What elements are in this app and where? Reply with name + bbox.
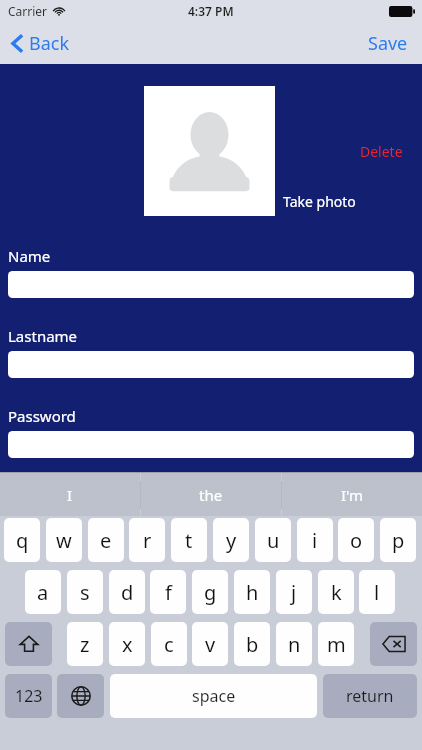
button[interactable]: e (88, 518, 124, 562)
button[interactable]: Backspace (370, 622, 417, 666)
staticText: u (267, 527, 280, 554)
staticText: s (80, 579, 90, 606)
button[interactable]: c (151, 622, 187, 666)
staticText: I'm (341, 485, 364, 505)
staticText: q (16, 527, 29, 554)
button[interactable]: x (109, 622, 145, 666)
staticText: space (192, 685, 236, 707)
button[interactable]: w (46, 518, 82, 562)
staticText: d (121, 579, 134, 606)
staticText: Take photo (283, 192, 356, 211)
button[interactable]: l (359, 570, 395, 614)
button[interactable] (8, 431, 414, 458)
button[interactable]: n (276, 622, 312, 666)
staticText: Lastname (8, 326, 78, 346)
button[interactable]: d (109, 570, 145, 614)
button[interactable]: p (380, 518, 416, 562)
staticText: n (288, 631, 301, 658)
staticText: t (185, 527, 193, 554)
staticText: k (331, 579, 342, 606)
staticText: r (143, 527, 152, 554)
button[interactable]: k (318, 570, 354, 614)
button[interactable]: return (323, 674, 417, 718)
staticText: l (374, 579, 380, 606)
staticText: Back (29, 31, 70, 56)
staticText: m (327, 631, 346, 658)
button[interactable]: a (25, 570, 61, 614)
staticText: a (37, 579, 49, 606)
button[interactable]: g (192, 570, 228, 614)
staticText: I (67, 485, 73, 505)
staticText: c (164, 631, 174, 658)
staticText: p (392, 527, 405, 554)
button[interactable]: i (297, 518, 333, 562)
button[interactable]: u (255, 518, 291, 562)
staticText: x (122, 631, 133, 658)
staticText: return (346, 685, 394, 707)
staticText: o (350, 527, 363, 554)
button[interactable]: j (276, 570, 312, 614)
button[interactable]: r (129, 518, 165, 562)
button[interactable]: t (171, 518, 207, 562)
staticText: z (80, 631, 90, 658)
button[interactable]: y (213, 518, 249, 562)
button[interactable]: Take photo (283, 192, 356, 211)
staticText: Password (8, 406, 76, 426)
staticText: 4:37 PM (188, 3, 234, 19)
staticText: Name (8, 246, 51, 266)
staticText: 123 (15, 685, 43, 707)
staticText: i (312, 527, 318, 554)
button[interactable]: f (150, 570, 186, 614)
staticText: Carrier (8, 3, 48, 19)
button[interactable]: s (67, 570, 103, 614)
button[interactable] (8, 351, 414, 378)
button[interactable]: q (4, 518, 40, 562)
staticText: j (291, 579, 297, 606)
staticText: Delete (360, 142, 403, 161)
staticText: y (226, 527, 237, 554)
button[interactable]: o (338, 518, 374, 562)
button[interactable]: space (110, 674, 317, 718)
button[interactable]: z (67, 622, 103, 666)
button[interactable] (8, 271, 414, 298)
button[interactable]: the (141, 473, 281, 516)
staticText: the (199, 485, 223, 505)
button[interactable]: v (192, 622, 228, 666)
staticText: w (56, 527, 72, 554)
button[interactable]: Back (6, 27, 76, 60)
button[interactable]: I (0, 473, 140, 516)
button[interactable]: b (234, 622, 270, 666)
staticText: Save (368, 31, 408, 56)
button[interactable]: Profile photo (144, 86, 275, 216)
button[interactable]: m (318, 622, 354, 666)
staticText: e (100, 527, 112, 554)
button[interactable]: h (234, 570, 270, 614)
staticText: v (205, 631, 216, 658)
staticText: f (165, 579, 172, 606)
button[interactable]: 123 (5, 674, 52, 718)
button[interactable]: I'm (282, 473, 422, 516)
button[interactable]: Delete (360, 142, 403, 161)
staticText: h (246, 579, 259, 606)
button[interactable]: Switch keyboard (57, 674, 104, 718)
staticText: b (246, 631, 259, 658)
button[interactable]: Shift (5, 622, 52, 666)
staticText: g (204, 579, 217, 606)
button[interactable]: Save (362, 27, 414, 60)
